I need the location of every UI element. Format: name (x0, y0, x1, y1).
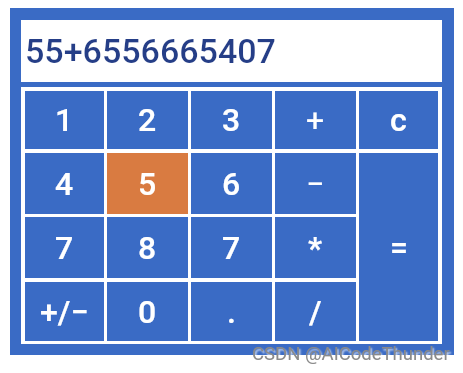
button[interactable]: − (275, 153, 356, 214)
staticText: 8 (138, 229, 157, 267)
button[interactable]: c (359, 91, 438, 149)
staticText: 5 (138, 165, 157, 203)
staticText: + (306, 101, 325, 139)
button[interactable]: 4 (25, 153, 104, 214)
staticText: CSDN @AICodeThunder (252, 343, 450, 365)
button[interactable]: 2 (107, 91, 188, 149)
staticText: +/− (40, 293, 89, 331)
staticText: − (306, 165, 325, 203)
staticText: 6 (222, 165, 241, 203)
button[interactable]: 1 (25, 91, 104, 149)
button[interactable]: 3 (191, 91, 272, 149)
button[interactable]: 8 (107, 217, 188, 278)
staticText: . (227, 293, 236, 331)
button[interactable]: +/− (25, 282, 104, 341)
staticText: 7 (222, 229, 241, 267)
button[interactable]: / (275, 282, 356, 341)
staticText: 3 (222, 101, 241, 139)
button[interactable]: 55+6556665407 (21, 20, 442, 82)
button[interactable]: 7 (191, 217, 272, 278)
button[interactable]: 5 (107, 153, 188, 214)
staticText: 7 (55, 229, 74, 267)
staticText: 0 (138, 293, 157, 331)
button[interactable]: 0 (107, 282, 188, 341)
staticText: 4 (55, 165, 74, 203)
staticText: / (309, 293, 322, 331)
button[interactable]: . (191, 282, 272, 341)
staticText: 1 (55, 101, 74, 139)
button[interactable]: + (275, 91, 356, 149)
staticText: 55+6556665407 (25, 31, 276, 71)
staticText: = (390, 228, 408, 266)
button[interactable]: = (359, 153, 438, 341)
button[interactable]: 7 (25, 217, 104, 278)
button[interactable]: 6 (191, 153, 272, 214)
staticText: * (308, 229, 323, 267)
staticText: c (390, 101, 407, 139)
staticText: 2 (138, 101, 157, 139)
button[interactable]: * (275, 217, 356, 278)
